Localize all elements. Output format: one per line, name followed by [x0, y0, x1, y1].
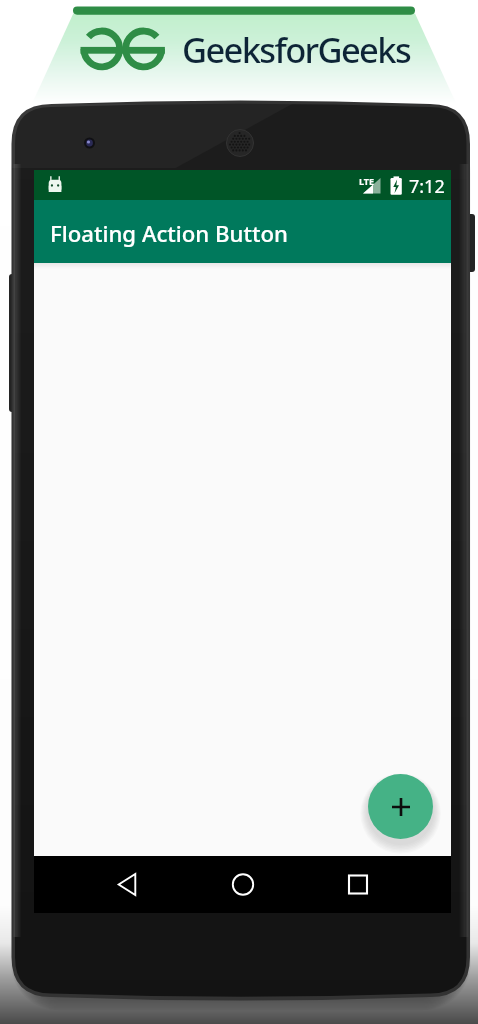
- staticText: LTE: [359, 175, 375, 187]
- button[interactable]: Recents: [330, 856, 386, 913]
- button[interactable]: Back: [99, 856, 155, 913]
- staticText: GeeksforGeeks: [182, 26, 411, 73]
- button[interactable]: Floating Action Button: [34, 200, 451, 263]
- button[interactable]: Add: [368, 774, 433, 839]
- button[interactable]: Home: [215, 856, 271, 913]
- staticText: Floating Action Button: [50, 218, 288, 248]
- staticText: 7:12: [409, 174, 445, 199]
